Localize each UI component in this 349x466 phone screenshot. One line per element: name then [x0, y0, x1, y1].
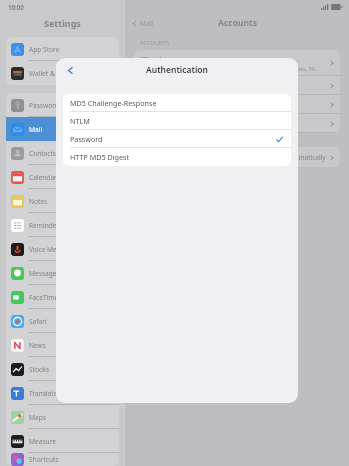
button[interactable]: FaceTime: [6, 285, 119, 309]
staticText: Notes: [29, 197, 48, 206]
staticText: Translate: [29, 389, 58, 398]
button[interactable]: Maps: [6, 405, 119, 429]
button[interactable]: Mail: [6, 117, 119, 141]
staticText: Voice Memos: [29, 245, 71, 254]
button[interactable]: Automatically: [134, 147, 340, 167]
staticText: News: [29, 341, 46, 350]
staticText: 10:00: [8, 3, 24, 11]
staticText: Measure: [29, 437, 56, 446]
button[interactable]: Back: [59, 59, 81, 81]
button[interactable]: Notes: [6, 189, 119, 213]
staticText: Authentication: [146, 64, 209, 76]
staticText: Calendar: [29, 173, 57, 182]
button[interactable]: HTTP MD5 Digest: [63, 148, 291, 166]
staticText: MD5 Challenge-Response: [70, 98, 157, 108]
button[interactable]: NTLM: [63, 112, 291, 130]
button[interactable]: Contacts: [6, 141, 119, 165]
staticText: Mail: [29, 125, 43, 134]
button[interactable]: Voice Memos: [6, 237, 119, 261]
staticText: Reminders: [29, 221, 63, 230]
button[interactable]: News: [6, 333, 119, 357]
button[interactable]: Measure: [6, 429, 119, 453]
staticText: Automatically: [284, 153, 326, 162]
staticText: Contacts: [29, 149, 57, 158]
button[interactable]: Calendar: [6, 165, 119, 189]
button[interactable]: Translate: [6, 381, 119, 405]
button[interactable]: Messages: [6, 261, 119, 285]
staticText: Password: [70, 134, 103, 144]
button[interactable]: App Store: [6, 37, 119, 61]
button[interactable]: Wallet & Apple Pay: [6, 61, 119, 85]
staticText: Stocks: [29, 365, 49, 374]
staticText: NTLM: [70, 116, 90, 126]
button[interactable]: Safari: [6, 309, 119, 333]
staticText: FaceTime: [29, 293, 59, 302]
staticText: Shortcuts: [29, 455, 59, 464]
button[interactable]: MD5 Challenge-Response: [63, 94, 291, 112]
staticText: iCloud: [140, 55, 162, 64]
staticText: Mail: [140, 19, 153, 28]
button[interactable]: [134, 76, 340, 95]
staticText: Passwords: [29, 101, 62, 110]
button[interactable]: iCloud: [134, 50, 340, 76]
button[interactable]: [134, 114, 340, 133]
button[interactable]: Password: [63, 130, 291, 148]
button[interactable]: Mail: [131, 19, 153, 28]
button[interactable]: Shortcuts: [6, 453, 119, 466]
staticText: Messages: [29, 269, 60, 278]
staticText: HTTP MD5 Digest: [70, 152, 130, 162]
staticText: iCloud Drive, Contacts, Calendars, Safar…: [140, 65, 320, 72]
staticText: App Store: [29, 45, 60, 54]
button[interactable]: Reminders: [6, 213, 119, 237]
button[interactable]: [134, 95, 340, 114]
staticText: ACCOUNTS: [140, 39, 170, 47]
staticText: Settings: [44, 17, 81, 29]
button[interactable]: Passwords: [6, 93, 119, 117]
staticText: Safari: [29, 317, 47, 326]
staticText: Accounts: [218, 17, 257, 29]
staticText: Wallet & Apple Pay: [29, 69, 87, 78]
button[interactable]: Stocks: [6, 357, 119, 381]
staticText: Maps: [29, 413, 46, 422]
